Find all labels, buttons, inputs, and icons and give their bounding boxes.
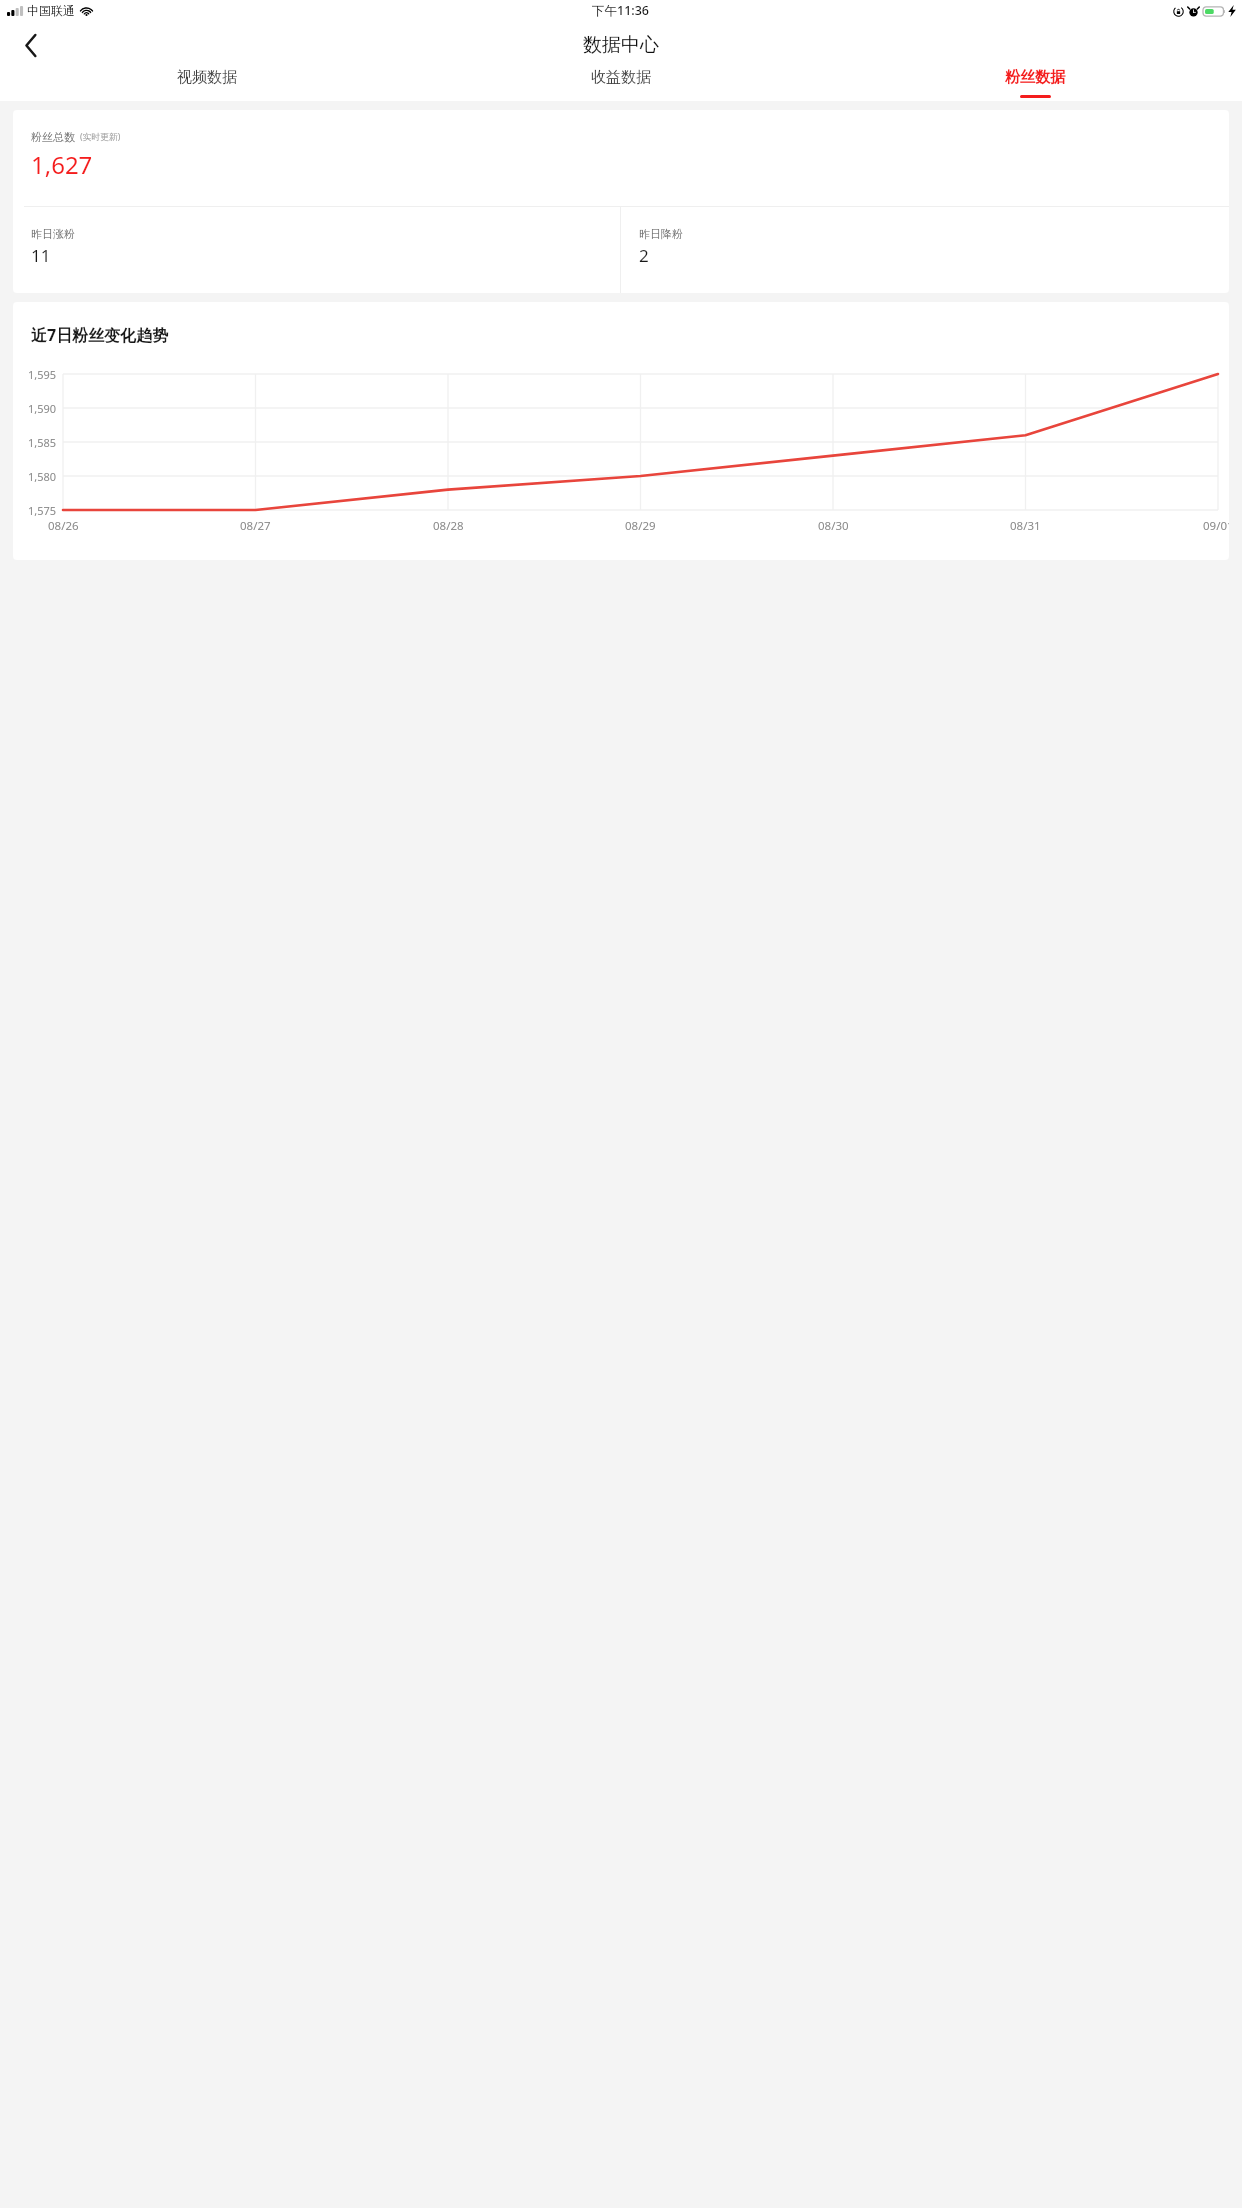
staticText: 粉丝数据 xyxy=(1005,68,1065,87)
staticText: 数据中心 xyxy=(583,33,659,57)
staticText: 2 xyxy=(639,244,649,267)
staticText: 1,585 xyxy=(28,435,57,450)
staticText: 收益数据 xyxy=(591,68,651,87)
staticText: 08/30 xyxy=(818,518,849,534)
staticText: 1,627 xyxy=(31,148,93,181)
staticText: 1,590 xyxy=(28,401,57,416)
staticText: 08/29 xyxy=(625,518,656,534)
button[interactable]: 视频数据 xyxy=(0,68,414,101)
button[interactable]: 收益数据 xyxy=(414,68,828,101)
staticText: 中国联通 xyxy=(27,3,75,18)
staticText: 1,595 xyxy=(28,367,57,382)
staticText: 昨日降粉 xyxy=(639,227,683,241)
button[interactable]: 昨日降粉 xyxy=(621,207,1229,293)
staticText: 11 xyxy=(31,244,51,267)
staticText: (实时更新) xyxy=(80,131,121,143)
button[interactable]: Back xyxy=(8,22,54,68)
staticText: 近7日粉丝变化趋势 xyxy=(31,324,169,346)
staticText: 1,575 xyxy=(28,503,57,518)
staticText: 08/31 xyxy=(1010,518,1041,534)
staticText: 昨日涨粉 xyxy=(31,227,75,241)
button[interactable]: 粉丝数据 xyxy=(828,68,1242,101)
staticText: 08/27 xyxy=(240,518,271,534)
staticText: 粉丝总数 xyxy=(31,130,75,144)
staticText: 09/01 xyxy=(1203,518,1229,534)
staticText: 视频数据 xyxy=(177,68,237,87)
staticText: 08/28 xyxy=(433,518,464,534)
staticText: 08/26 xyxy=(48,518,79,534)
button[interactable]: 昨日涨粉 xyxy=(13,207,620,293)
staticText: 下午11:36 xyxy=(592,2,650,19)
staticText: 1,580 xyxy=(28,469,57,484)
